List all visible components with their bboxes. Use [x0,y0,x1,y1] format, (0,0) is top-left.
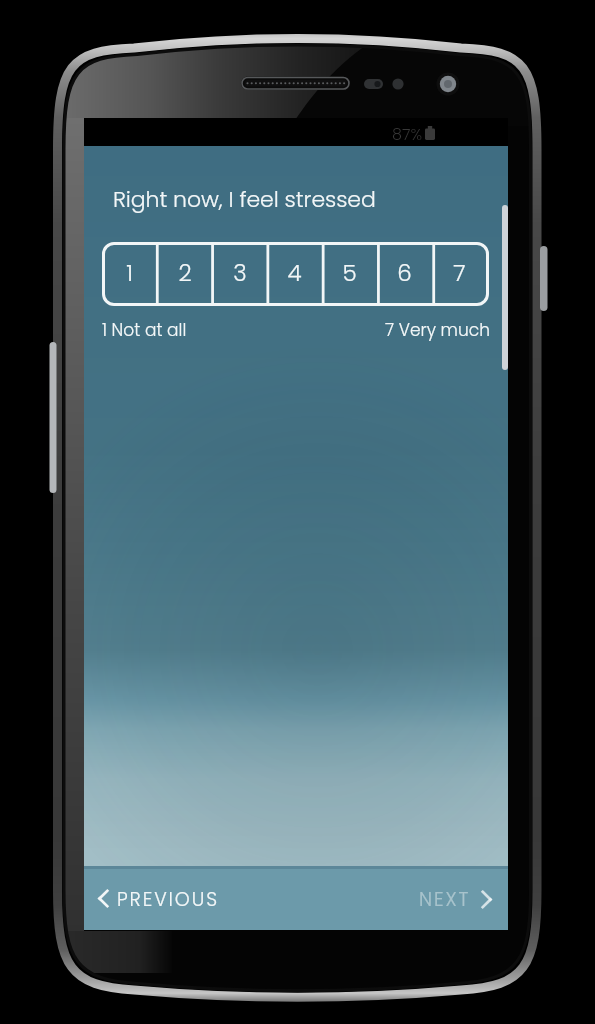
staticText: 7 [453,257,466,289]
staticText: 87% [392,123,423,145]
button[interactable]: 6 [377,241,432,305]
staticText: Right now, I feel stressed [113,184,376,215]
button[interactable]: 4 [267,241,322,305]
button[interactable]: Previous [84,866,244,930]
button[interactable]: NEXT [394,866,508,930]
staticText: 4 [287,257,302,289]
staticText: 3 [233,257,247,289]
staticText: 2 [178,257,192,289]
other: Previous [98,889,110,909]
staticText: 1 [126,257,133,289]
button[interactable]: 7 [432,241,487,305]
button[interactable]: 5 [322,241,377,305]
button[interactable]: 1 [102,241,157,305]
staticText: 5 [342,257,357,289]
staticText: 6 [397,257,412,289]
other: Next [480,890,492,910]
staticText: 1 Not at all [102,318,187,342]
staticText: PREVIOUS [117,886,219,913]
staticText: NEXT [419,886,471,913]
button[interactable]: 3 [212,241,267,305]
staticText: 7 Very much [385,318,490,342]
button[interactable]: 2 [157,241,212,305]
